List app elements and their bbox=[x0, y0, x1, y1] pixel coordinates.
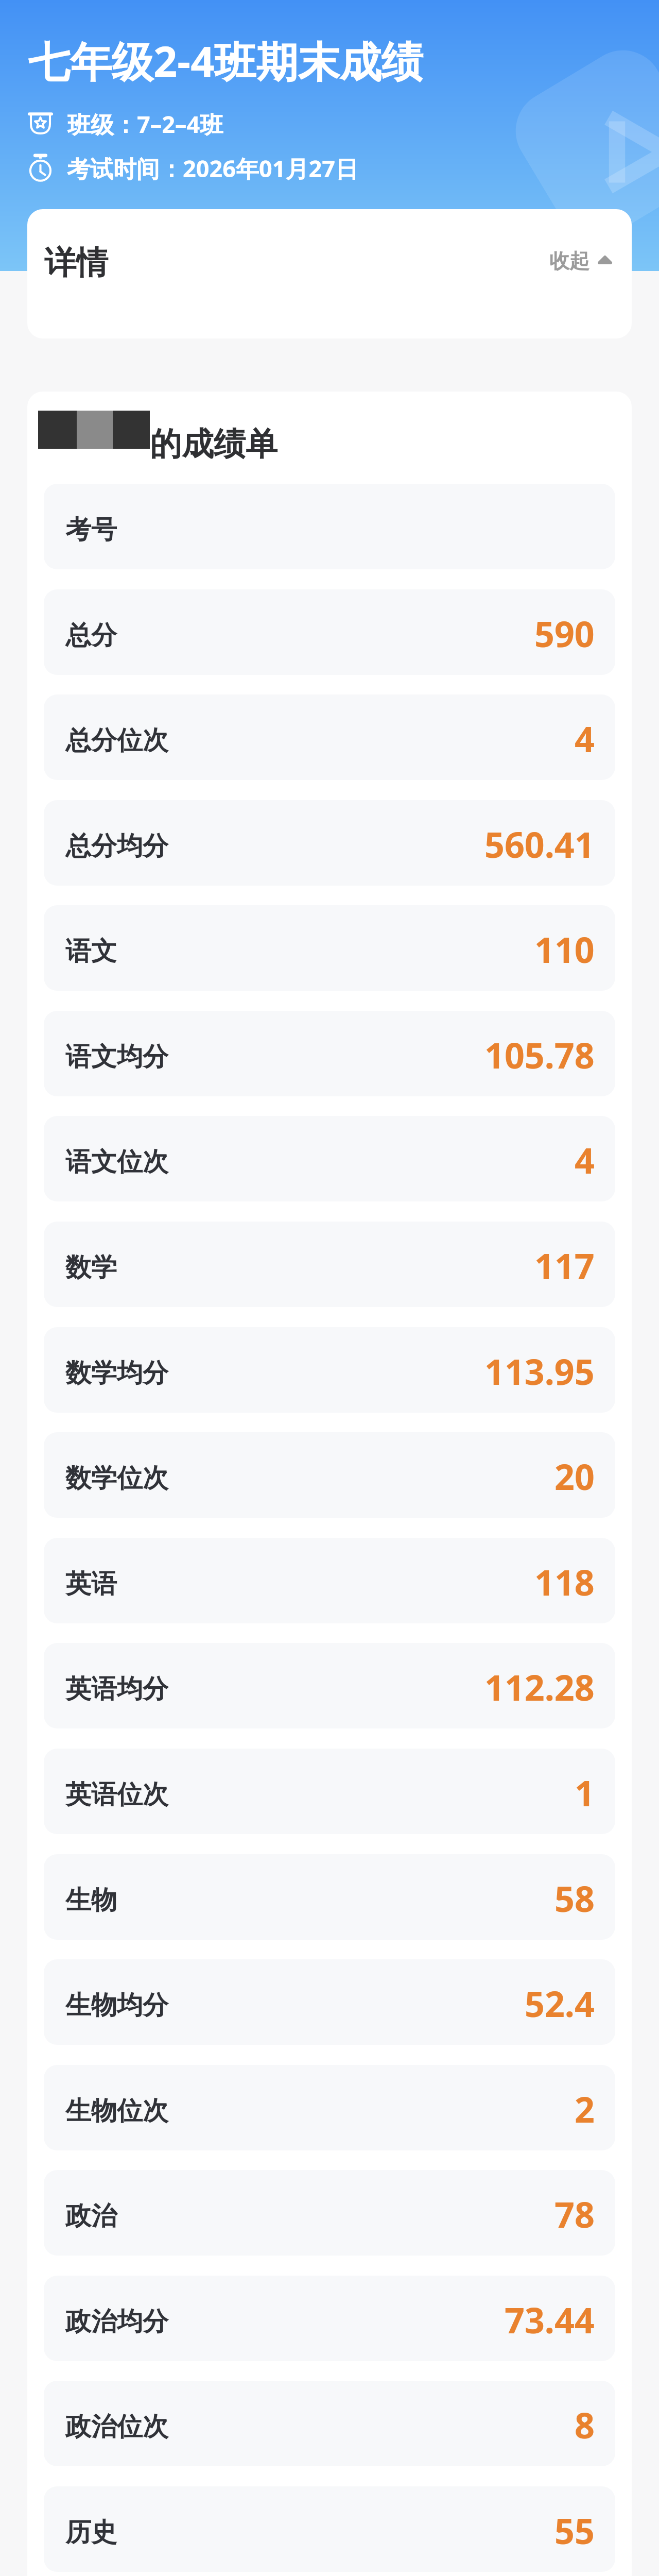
staticText: 总分位次 bbox=[65, 724, 168, 757]
button[interactable]: 数学位次 bbox=[44, 1432, 615, 1518]
staticText: 20 bbox=[554, 1452, 595, 1500]
button[interactable]: 英语位次 bbox=[44, 1749, 615, 1834]
staticText: 1 bbox=[575, 1769, 595, 1817]
button[interactable]: 总分位次 bbox=[44, 694, 615, 780]
staticText: 政治均分 bbox=[65, 2306, 168, 2338]
button[interactable]: 语文 bbox=[44, 905, 615, 991]
staticText: 2 bbox=[575, 2085, 595, 2133]
button[interactable]: 生物均分 bbox=[44, 1959, 615, 2045]
staticText: 总分 bbox=[65, 619, 117, 652]
staticText: 总分均分 bbox=[65, 830, 168, 862]
staticText: 英语均分 bbox=[65, 1673, 168, 1705]
staticText: 考号 bbox=[65, 514, 117, 546]
button[interactable]: 考号 bbox=[44, 484, 615, 569]
other: 考试时间 bbox=[29, 154, 51, 181]
staticText: 58 bbox=[554, 1874, 595, 1922]
staticText: 生物 bbox=[65, 1884, 117, 1917]
button[interactable]: 详情 bbox=[27, 209, 632, 338]
staticText: 考试时间：2026年01月27日 bbox=[67, 152, 358, 184]
staticText: 班级：7–2–4班 bbox=[67, 108, 223, 140]
staticText: 数学 bbox=[65, 1251, 117, 1284]
staticText: 105.78 bbox=[484, 1031, 595, 1079]
staticText: 4 bbox=[575, 1136, 595, 1184]
staticText: 4 bbox=[575, 715, 595, 762]
staticText: 8 bbox=[575, 2401, 595, 2449]
staticText: 历史 bbox=[65, 2516, 117, 2549]
staticText: 政治位次 bbox=[65, 2411, 168, 2443]
other: 收起 bbox=[598, 256, 612, 264]
staticText: 生物位次 bbox=[65, 2095, 168, 2127]
button[interactable]: 语文位次 bbox=[44, 1116, 615, 1201]
staticText: 数学位次 bbox=[65, 1462, 168, 1495]
button[interactable]: 政治 bbox=[44, 2170, 615, 2256]
staticText: 112.28 bbox=[484, 1663, 595, 1711]
button[interactable]: 数学均分 bbox=[44, 1327, 615, 1413]
button[interactable]: 生物 bbox=[44, 1854, 615, 1940]
staticText: 语文 bbox=[65, 935, 117, 968]
button[interactable]: 英语 bbox=[44, 1538, 615, 1623]
button[interactable]: 政治位次 bbox=[44, 2381, 615, 2466]
staticText: 110 bbox=[534, 925, 595, 973]
button[interactable]: 总分均分 bbox=[44, 800, 615, 886]
staticText: 的成绩单 bbox=[150, 424, 278, 464]
staticText: 78 bbox=[554, 2190, 595, 2238]
staticText: 117 bbox=[534, 1242, 595, 1290]
button[interactable]: 政治均分 bbox=[44, 2276, 615, 2361]
staticText: 英语 bbox=[65, 1568, 117, 1600]
staticText: 生物均分 bbox=[65, 1989, 168, 2022]
button[interactable]: 语文均分 bbox=[44, 1011, 615, 1096]
button[interactable]: 总分 bbox=[44, 589, 615, 675]
staticText: 73.44 bbox=[505, 2296, 595, 2344]
staticText: 52.4 bbox=[525, 1979, 595, 2027]
button[interactable]: 英语均分 bbox=[44, 1643, 615, 1728]
staticText: 七年级2-4班期末成绩 bbox=[28, 32, 423, 89]
staticText: 55 bbox=[554, 2506, 595, 2554]
staticText: 政治 bbox=[65, 2200, 117, 2232]
staticText: 英语位次 bbox=[65, 1778, 168, 1811]
staticText: 语文均分 bbox=[65, 1041, 168, 1073]
staticText: 560.41 bbox=[484, 820, 595, 868]
button[interactable]: 数学 bbox=[44, 1222, 615, 1307]
button[interactable]: 生物位次 bbox=[44, 2065, 615, 2150]
staticText: 语文位次 bbox=[65, 1146, 168, 1178]
staticText: 详情 bbox=[44, 243, 108, 283]
staticText: 590 bbox=[534, 609, 595, 657]
staticText: 113.95 bbox=[484, 1347, 595, 1395]
staticText: 数学均分 bbox=[65, 1357, 168, 1389]
staticText: 收起 bbox=[549, 248, 589, 274]
other: 班级 bbox=[29, 112, 51, 133]
staticText: 118 bbox=[534, 1558, 595, 1606]
button[interactable]: 历史 bbox=[44, 2486, 615, 2572]
